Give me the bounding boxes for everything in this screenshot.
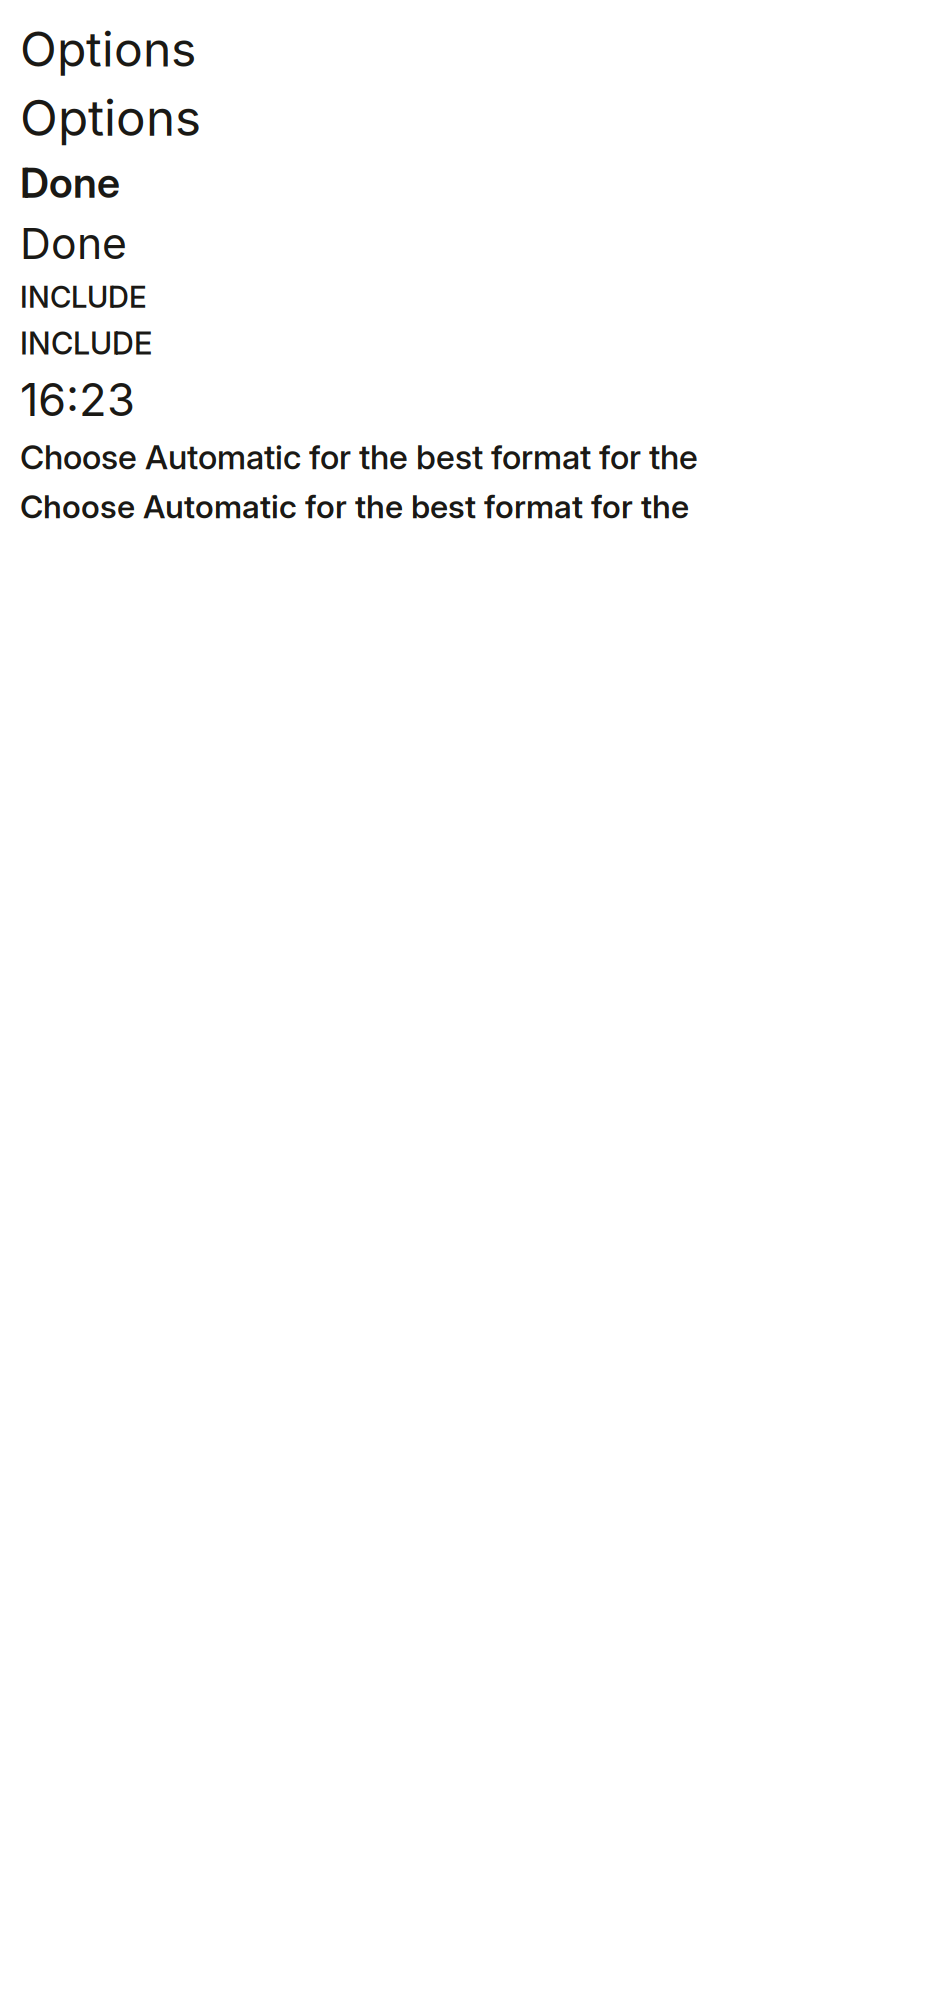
staticText: INCLUDE — [20, 325, 152, 362]
staticText: Options — [20, 20, 196, 78]
staticText: Choose Automatic for the best format for… — [20, 437, 698, 477]
staticText: Done — [20, 218, 127, 269]
staticText: Done — [20, 158, 120, 208]
staticText: INCLUDE — [20, 279, 147, 315]
staticText: Options — [20, 88, 201, 148]
staticText: 16:23 — [20, 372, 135, 427]
staticText: Choose Automatic for the best format for… — [20, 487, 689, 526]
